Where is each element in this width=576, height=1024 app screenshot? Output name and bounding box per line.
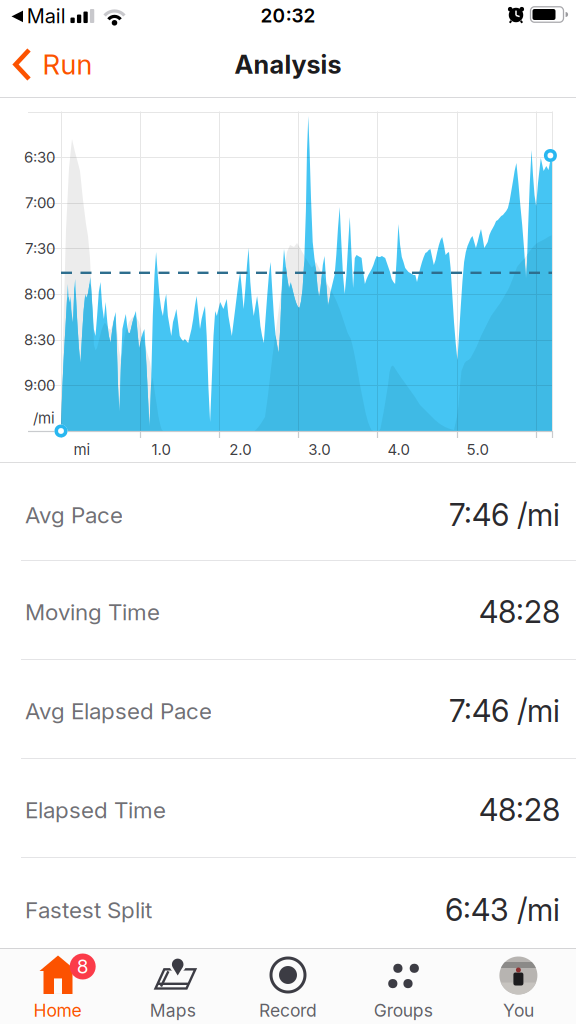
staticText: Analysis [234,49,341,80]
staticText: /mi [33,409,55,427]
staticText: Mail [27,4,66,28]
staticText: Avg Elapsed Pace [25,697,212,725]
staticText: 8:30 [24,331,55,349]
staticText: 8:00 [24,285,55,303]
button[interactable]: Record [230,949,346,1024]
staticText: 6:30 [24,148,55,166]
staticText: 9:00 [24,376,55,394]
button[interactable]: Groups [346,949,461,1024]
staticText: 48:28 [479,593,560,630]
staticText: 7:30 [25,239,55,257]
staticText: 5.0 [466,440,488,458]
staticText: Run [42,48,92,81]
staticText: 7:46 /mi [449,496,560,533]
button[interactable]: Maps [115,949,230,1024]
staticText: 6:43 /mi [445,891,560,928]
staticText: 4.0 [387,440,409,458]
staticText: Record [259,1000,317,1021]
staticText: 7:46 /mi [449,692,560,729]
button[interactable]: Run [11,39,123,89]
staticText: Fastest Split [25,896,152,924]
staticText: Groups [374,1000,433,1021]
staticText: 7:00 [25,194,55,212]
staticText: 3.0 [308,440,330,458]
staticText: 8 [77,955,89,978]
staticText: Avg Pace [25,501,123,529]
button[interactable]: 8 [0,949,115,1024]
staticText: You [503,1000,534,1021]
staticText: 1.0 [152,440,171,458]
button[interactable]: You [461,949,576,1024]
staticText: 48:28 [479,791,560,828]
staticText: mi [73,440,90,458]
staticText: 2.0 [229,440,251,458]
staticText: 20:32 [260,4,315,27]
staticText: Home [34,1000,82,1021]
staticText: Maps [150,1000,196,1021]
staticText: Elapsed Time [25,796,166,824]
staticText: Moving Time [25,598,160,626]
